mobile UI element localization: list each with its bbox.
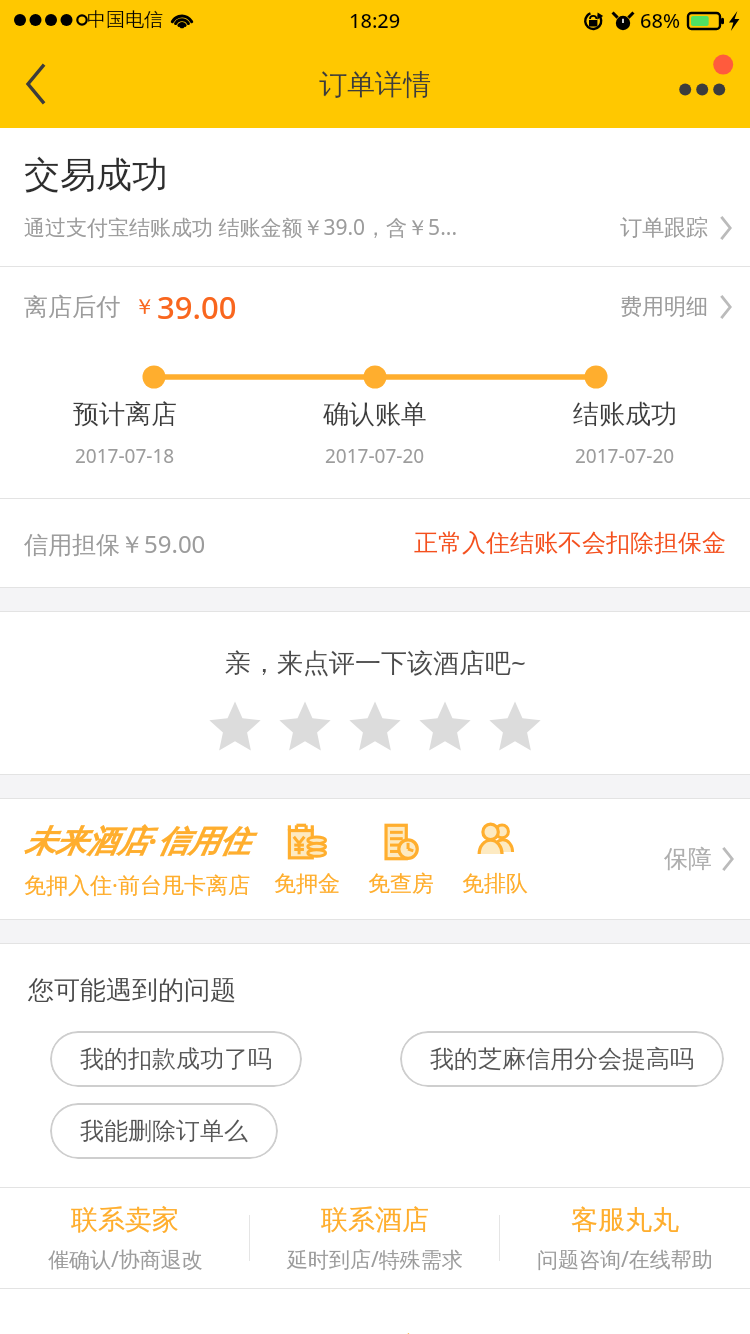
staticText: 亲，来点评一下该酒店吧~: [225, 644, 526, 680]
button[interactable]: Back: [0, 40, 72, 128]
button[interactable]: 订单跟踪: [620, 214, 732, 242]
button[interactable]: 联系卖家: [0, 1188, 250, 1288]
staticText: 再次预订: [317, 1329, 433, 1334]
staticText: 正常入住结账不会扣除担保金: [414, 528, 726, 558]
staticText: 延时到店/特殊需求: [287, 1245, 463, 1274]
button[interactable]: Rate 2 stars: [276, 698, 334, 756]
staticText: 免押金: [274, 870, 340, 898]
button[interactable]: 未来酒店·信用住: [0, 799, 750, 919]
staticText: 68%: [640, 7, 680, 34]
staticText: 2017-07-18: [75, 443, 175, 469]
staticText: 确认账单: [323, 398, 427, 431]
staticText: 未来酒店·信用住: [24, 819, 250, 861]
staticText: 费用明细: [620, 293, 708, 321]
staticText: 信用担保￥59.00: [24, 527, 206, 560]
staticText: 中国电信: [87, 8, 163, 32]
button[interactable]: 我的芝麻信用分会提高吗: [400, 1031, 724, 1087]
button[interactable]: Rate 5 stars: [486, 698, 544, 756]
staticText: 交易成功: [24, 152, 168, 197]
button[interactable]: 离店后付: [0, 267, 750, 346]
staticText: 我能删除订单么: [80, 1116, 248, 1146]
staticText: 2017-07-20: [575, 443, 675, 469]
button[interactable]: Rate 3 stars: [346, 698, 404, 756]
staticText: 订单详情: [319, 67, 431, 102]
button[interactable]: More options: [654, 40, 750, 128]
button[interactable]: 我能删除订单么: [50, 1103, 278, 1159]
staticText: 免排队: [462, 870, 528, 898]
button[interactable]: 联系酒店: [250, 1188, 500, 1288]
staticText: ￥: [134, 294, 155, 320]
button[interactable]: 客服丸丸: [500, 1188, 750, 1288]
staticText: 联系酒店: [321, 1203, 429, 1237]
staticText: 催确认/协商退改: [48, 1245, 203, 1274]
button[interactable]: 信用担保￥59.00: [0, 499, 750, 587]
staticText: 我的芝麻信用分会提高吗: [430, 1044, 694, 1074]
staticText: 保障: [664, 844, 712, 874]
staticText: 免押入住·前台甩卡离店: [24, 869, 250, 899]
staticText: 预计离店: [73, 398, 177, 431]
staticText: 18:29: [349, 7, 401, 34]
staticText: 结账成功: [573, 398, 677, 431]
button[interactable]: 保障: [664, 844, 734, 874]
button[interactable]: Rate 1 stars: [206, 698, 264, 756]
button[interactable]: 我的扣款成功了吗: [50, 1031, 302, 1087]
staticText: 离店后付: [24, 292, 120, 322]
button[interactable]: Rate 4 stars: [416, 698, 474, 756]
staticText: 问题咨询/在线帮助: [537, 1245, 713, 1274]
staticText: 您可能遇到的问题: [28, 974, 236, 1007]
staticText: 39.00: [157, 286, 237, 328]
staticText: 联系卖家: [71, 1203, 179, 1237]
staticText: 订单跟踪: [620, 214, 708, 242]
staticText: 2017-07-20: [325, 443, 425, 469]
staticText: 通过支付宝结账成功 结账金额￥39.0，含￥5...: [24, 213, 458, 242]
staticText: 客服丸丸: [571, 1203, 679, 1237]
staticText: 免查房: [368, 870, 434, 898]
staticText: 我的扣款成功了吗: [80, 1044, 272, 1074]
